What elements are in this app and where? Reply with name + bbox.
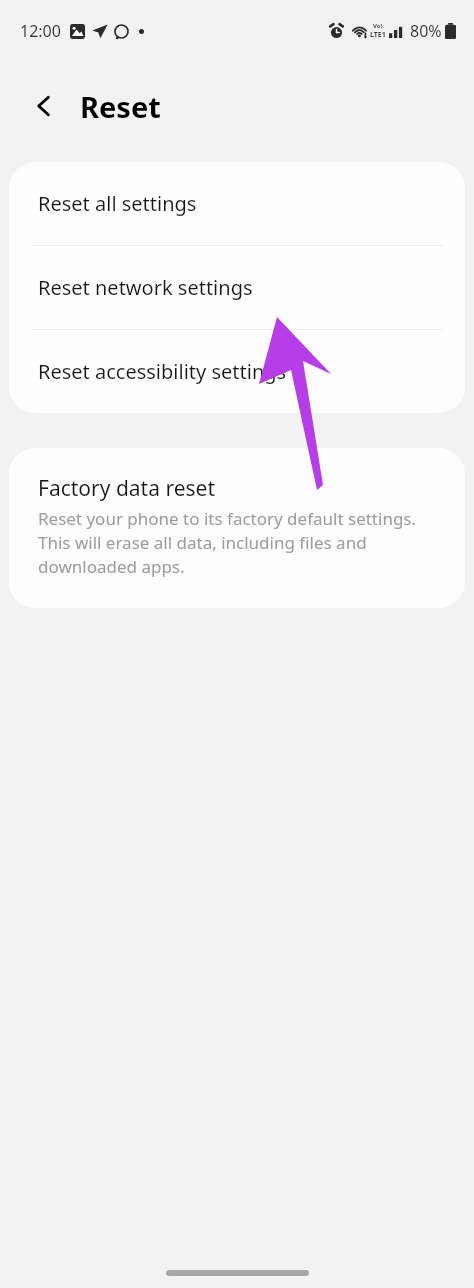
staticText: Reset network settings (38, 274, 253, 301)
staticText: Factory data reset (38, 474, 215, 503)
staticText: Reset (80, 87, 161, 126)
staticText: Reset your phone to its factory default … (38, 507, 439, 578)
staticText: 80% (410, 20, 442, 42)
staticText: Reset accessibility settings (38, 358, 287, 385)
staticText: Reset all settings (38, 190, 197, 217)
button[interactable]: Reset network settings (9, 246, 465, 329)
staticText: 12:00 (20, 20, 61, 42)
button[interactable]: Reset accessibility settings (9, 330, 465, 413)
button[interactable]: Reset all settings (9, 162, 465, 245)
button[interactable]: Factory data reset (9, 448, 465, 608)
staticText: LTE1 (370, 30, 386, 40)
button[interactable]: Back (22, 84, 66, 128)
staticText: Vo) (373, 22, 383, 30)
